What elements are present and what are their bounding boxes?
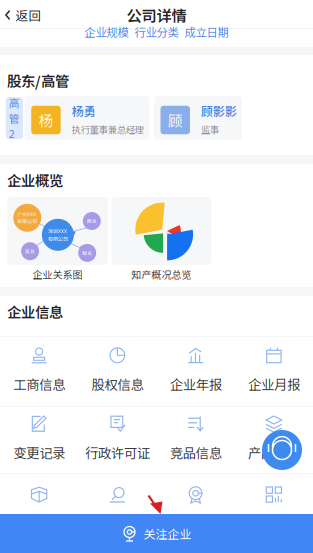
button[interactable]: 企业年报 — [156, 336, 235, 406]
staticText: 杨勇 — [72, 102, 96, 119]
button[interactable]: 返回 — [0, 0, 41, 28]
staticText: 变更记录 — [13, 443, 65, 462]
button[interactable]: 竞品信息 — [156, 405, 235, 475]
button[interactable]: 顾 — [154, 96, 242, 140]
staticText: 返回 — [15, 6, 41, 24]
staticText: 甜总 — [82, 249, 92, 256]
staticText: 广州XXX 有限公司 — [17, 211, 37, 225]
staticText: 产品信息 — [248, 443, 300, 462]
button[interactable]: 更多 — [235, 474, 313, 515]
button[interactable]: 企业月报 — [235, 336, 313, 406]
button[interactable]: 知产概况总览 — [111, 197, 211, 287]
staticText: 知产概况总览 — [131, 267, 191, 281]
button[interactable]: 行政许可证 — [78, 405, 156, 475]
staticText: 监事 — [201, 122, 219, 136]
staticText: 行政许可证 — [85, 443, 150, 462]
button[interactable]: 产品信息 — [235, 405, 313, 475]
button[interactable]: 变更记录 — [0, 405, 78, 475]
button[interactable]: 杨 — [25, 96, 149, 140]
button[interactable]: 在线客服 — [262, 430, 302, 470]
staticText: 企业关系图 — [32, 267, 82, 281]
staticText: 企业规模 行业分类 成立日期 — [84, 24, 228, 40]
button[interactable]: 更多 — [78, 474, 156, 515]
staticText: 深圳XXX 有限公司 — [48, 227, 68, 242]
staticText: 企业月报 — [248, 374, 300, 394]
staticText: 杨 — [38, 109, 53, 131]
button[interactable]: 更多 — [156, 474, 235, 515]
staticText: 竞品信息 — [170, 443, 222, 462]
staticText: 股东/高管 — [7, 70, 69, 91]
staticText: 工商信息 — [13, 374, 65, 394]
staticText: 执行董事兼总经理 — [72, 122, 144, 136]
staticText: 顾 — [168, 109, 183, 131]
button[interactable]: 股权信息 — [78, 336, 156, 406]
staticText: 吴总 — [25, 248, 35, 255]
button[interactable]: 广州XXX 有限公司 — [7, 197, 108, 287]
button[interactable]: 关注企业 — [0, 514, 313, 553]
staticText: 股权信息 — [91, 374, 143, 394]
button[interactable]: 工商信息 — [0, 336, 78, 406]
staticText: 关注企业 — [143, 525, 191, 542]
button[interactable]: 更多 — [0, 474, 78, 515]
staticText: 高 管 2 — [9, 95, 20, 141]
staticText: 顾影影 — [201, 102, 237, 119]
staticText: 公司详情 — [126, 4, 186, 26]
staticText: 企业年报 — [170, 374, 222, 394]
staticText: 企业信息 — [7, 301, 63, 322]
staticText: 胡总 — [87, 217, 97, 224]
staticText: 企业概览 — [7, 170, 63, 190]
